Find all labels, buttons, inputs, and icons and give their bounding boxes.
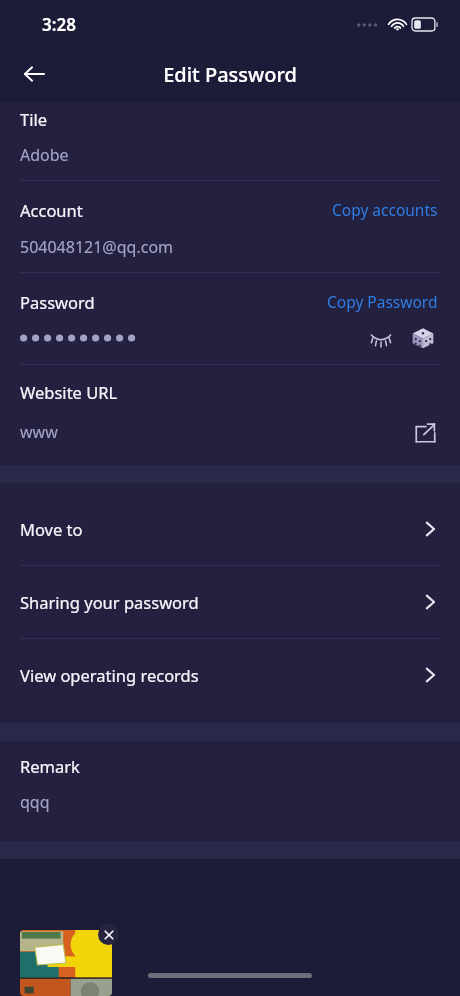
staticText: Adobe [20, 144, 69, 166]
button[interactable]: Generate password [406, 326, 440, 350]
button[interactable]: Open website [410, 417, 440, 447]
staticText: Password [20, 291, 325, 313]
staticText: View operating records [20, 664, 420, 686]
staticText: Account [20, 199, 330, 221]
staticText: Copy Password [327, 291, 438, 312]
staticText: Website URL [20, 381, 118, 403]
staticText: Copy accounts [332, 199, 438, 220]
staticText: 3:28 [42, 13, 76, 36]
button[interactable]: View operating records [0, 639, 460, 711]
button[interactable]: Sharing your password [0, 566, 460, 638]
button[interactable]: Move to [0, 493, 460, 565]
staticText: Sharing your password [20, 591, 420, 613]
staticText: 504048121@qq.com [20, 236, 174, 258]
staticText: Tile [20, 108, 440, 130]
staticText: qqq [20, 791, 50, 813]
button[interactable]: Copy Password [325, 289, 440, 314]
button[interactable]: Copy accounts [330, 197, 440, 222]
staticText: Edit Password [163, 61, 297, 88]
staticText: www [20, 421, 410, 443]
button[interactable] [20, 930, 112, 996]
staticText: Remark [20, 755, 440, 777]
button[interactable]: Show password [364, 326, 398, 350]
button[interactable]: Back [12, 52, 56, 96]
button[interactable]: Remove attachment [98, 924, 119, 945]
staticText: Move to [20, 518, 420, 540]
